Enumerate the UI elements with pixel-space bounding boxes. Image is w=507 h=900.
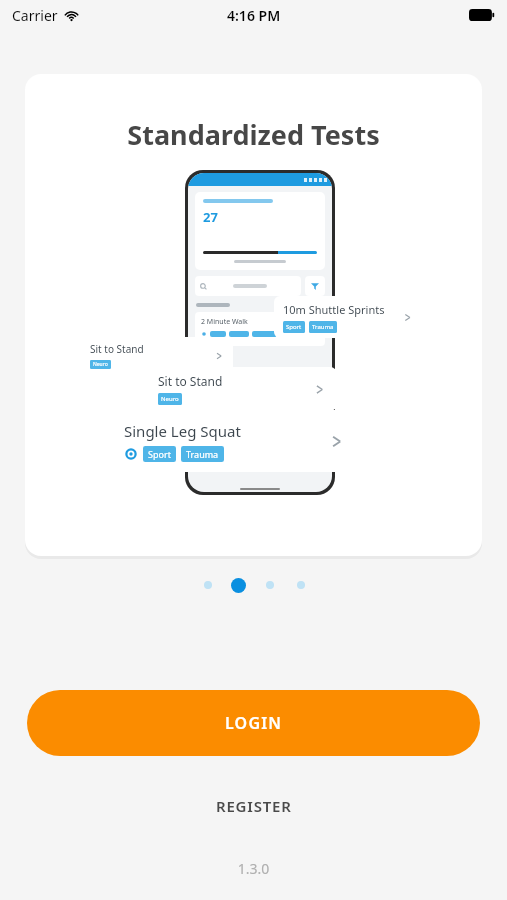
staticText: 1.3.0 (0, 859, 507, 878)
staticText: Sport (286, 323, 302, 331)
button[interactable]: 10m Shuttle Sprints (274, 296, 422, 338)
button[interactable]: REGISTER (194, 790, 314, 822)
staticText: 2 Minute Walk (201, 317, 248, 327)
staticText: REGISTER (216, 796, 292, 816)
staticText: LOGIN (225, 712, 283, 734)
staticText: Standardized Tests (25, 116, 482, 153)
staticText: Neuro (161, 395, 179, 403)
staticText: Trauma (186, 448, 219, 460)
staticText: Trauma (312, 323, 334, 331)
staticText: 27 (203, 208, 218, 226)
staticText: Neuro (93, 361, 108, 368)
staticText: Sit to Stand (158, 373, 223, 389)
button[interactable]: Single Leg Squat (110, 410, 359, 472)
staticText: 10m Shuttle Sprints (283, 302, 385, 317)
staticText: Sit to Stand (90, 342, 144, 356)
staticText: 4:16 PM (227, 6, 281, 25)
button[interactable]: LOGIN (27, 690, 480, 756)
staticText: Carrier (12, 6, 58, 25)
button[interactable]: Sit to Stand (147, 367, 337, 411)
staticText: Single Leg Squat (124, 421, 241, 441)
button[interactable]: Sit to Stand (81, 337, 233, 374)
staticText: Sport (148, 448, 171, 460)
